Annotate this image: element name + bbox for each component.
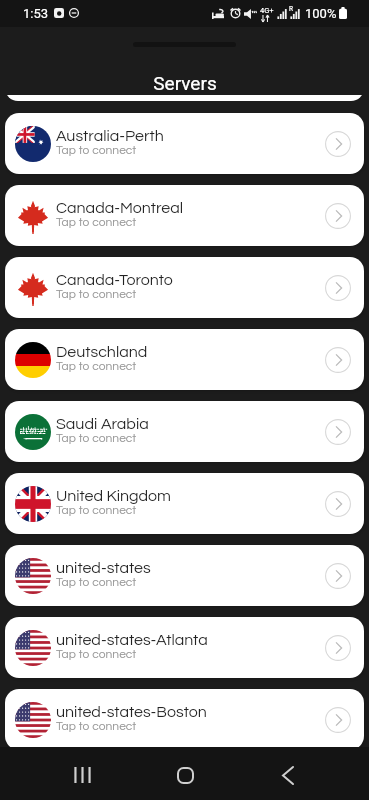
staticText: united-states-Boston (56, 704, 207, 720)
button[interactable]: united-states-Atlanta (5, 617, 364, 678)
staticText: Tap to connect (56, 720, 137, 732)
button[interactable]: Home (161, 751, 209, 799)
staticText: Canada-Montreal (56, 200, 183, 216)
staticText: 100% (305, 6, 337, 21)
staticText: Australia-Perth (56, 128, 164, 144)
staticText: United Kingdom (56, 488, 171, 504)
staticText: Servers (153, 72, 217, 94)
staticText: Tap to connect (56, 432, 137, 444)
button[interactable]: United Kingdom (5, 473, 364, 534)
staticText: 1:53 (23, 6, 49, 21)
button[interactable]: united-states-Boston (5, 689, 364, 750)
staticText: Tap to connect (56, 360, 137, 372)
staticText: Deutschland (56, 344, 148, 360)
button[interactable]: Australia-Perth (5, 113, 364, 174)
staticText: united-states-Atlanta (56, 632, 208, 648)
staticText: Tap to connect (56, 648, 137, 660)
staticText: Canada-Toronto (56, 272, 173, 288)
staticText: Tap to connect (56, 504, 137, 516)
button[interactable]: Canada-Toronto (5, 257, 364, 318)
button[interactable]: Deutschland (5, 329, 364, 390)
staticText: united-states (56, 560, 151, 576)
staticText: Saudi Arabia (56, 416, 149, 432)
staticText: R (289, 5, 294, 13)
button[interactable]: Recent apps (58, 751, 106, 799)
button[interactable]: united-states (5, 545, 364, 606)
staticText: Tap to connect (56, 576, 137, 588)
button[interactable]: Saudi Arabia (5, 401, 364, 462)
staticText: 4G+ (260, 6, 274, 15)
button[interactable]: Back (264, 751, 312, 799)
button[interactable]: Canada-Montreal (5, 185, 364, 246)
staticText: Tap to connect (56, 288, 137, 300)
staticText: Tap to connect (56, 216, 137, 228)
staticText: Tap to connect (56, 144, 137, 156)
